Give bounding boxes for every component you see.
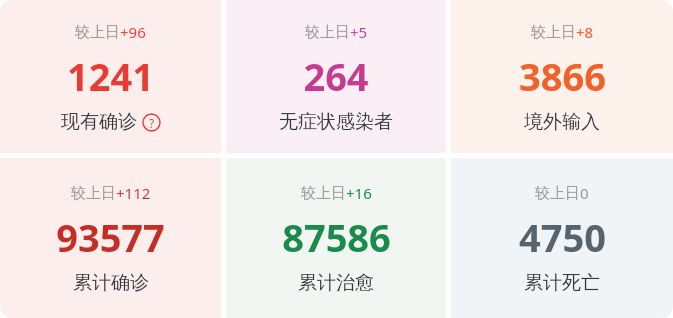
staticText: 无症状感染者 (279, 110, 393, 134)
staticText: +112 (116, 183, 151, 203)
staticText: +8 (576, 22, 594, 42)
staticText: 较上日 (71, 184, 116, 203)
staticText: 较上日 (301, 184, 346, 203)
staticText: 93577 (56, 211, 165, 263)
staticText: 较上日 (75, 23, 120, 42)
button[interactable]: 较上日 (451, 158, 673, 318)
button[interactable]: 较上日 (0, 0, 221, 153)
staticText: 累计死亡 (524, 271, 600, 295)
staticText: 境外输入 (524, 110, 600, 134)
staticText: 4750 (519, 211, 606, 263)
staticText: 较上日 (305, 23, 350, 42)
staticText: 现有确诊 (61, 110, 137, 134)
staticText: 累计治愈 (298, 271, 374, 295)
button[interactable]: 较上日 (0, 158, 221, 318)
staticText: +5 (350, 22, 368, 42)
staticText: 累计确诊 (73, 271, 149, 295)
button[interactable]: 较上日 (226, 158, 446, 318)
staticText: ? (149, 115, 155, 131)
button[interactable]: Help about existing confirmed cases (142, 113, 161, 132)
staticText: 0 (580, 183, 589, 203)
staticText: 87586 (282, 211, 391, 263)
staticText: 较上日 (535, 184, 580, 203)
staticText: 1241 (67, 50, 154, 102)
button[interactable]: 较上日 (451, 0, 673, 153)
staticText: 3866 (519, 50, 606, 102)
button[interactable]: 较上日 (226, 0, 446, 153)
staticText: 264 (303, 50, 369, 102)
staticText: +16 (346, 183, 372, 203)
staticText: +96 (120, 22, 146, 42)
staticText: 较上日 (531, 23, 576, 42)
